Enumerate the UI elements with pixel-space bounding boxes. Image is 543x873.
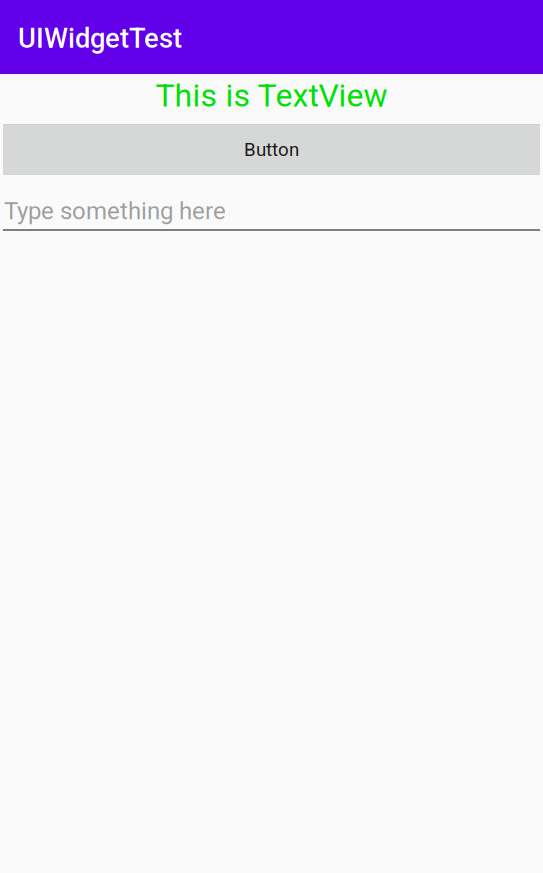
staticText: Type something here (4, 197, 226, 225)
staticText: UIWidgetTest (18, 22, 182, 54)
staticText: Button (244, 139, 299, 160)
staticText: This is TextView (155, 77, 387, 114)
button[interactable]: Button (3, 124, 540, 175)
button[interactable]: Type something here (3, 193, 540, 231)
